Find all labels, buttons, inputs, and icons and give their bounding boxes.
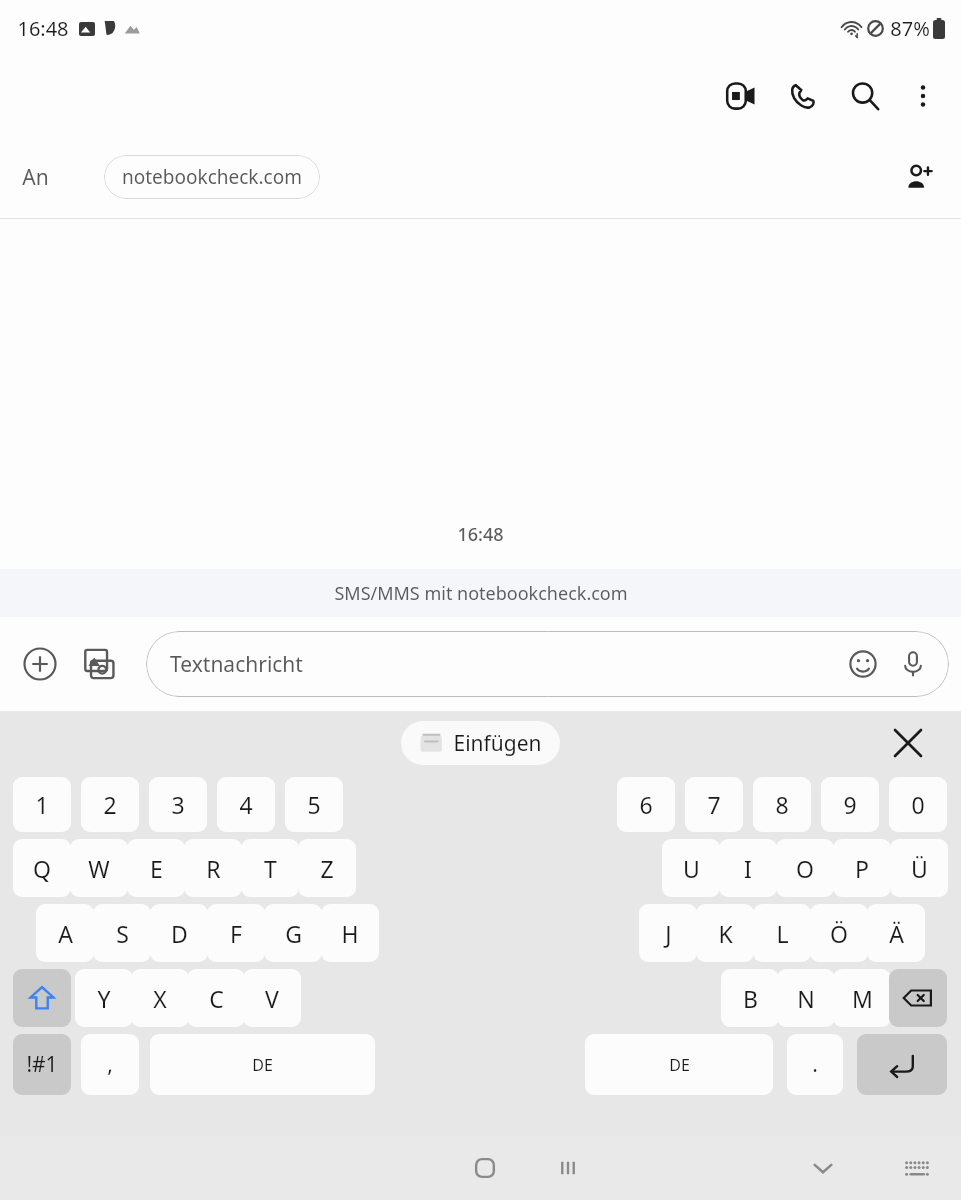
button[interactable]: Hide keyboard	[795, 1140, 851, 1196]
button[interactable]: Ö	[810, 904, 868, 962]
button[interactable]: ,	[81, 1034, 139, 1095]
button[interactable]: G	[264, 904, 322, 962]
button[interactable]: O	[776, 839, 834, 897]
button[interactable]: F	[207, 904, 265, 962]
button[interactable]: .	[787, 1034, 843, 1095]
button[interactable]: T	[241, 839, 299, 897]
button[interactable]: U	[662, 839, 720, 897]
button[interactable]: J	[639, 904, 697, 962]
button[interactable]: H	[321, 904, 379, 962]
button[interactable]: B	[721, 969, 779, 1027]
staticText: Y	[97, 983, 111, 1014]
button[interactable]: Gallery	[76, 640, 124, 688]
button[interactable]: 1	[13, 777, 71, 832]
staticText: O	[796, 853, 814, 884]
staticText: 2	[103, 789, 117, 820]
button[interactable]: More options	[899, 72, 947, 120]
button[interactable]: 4	[217, 777, 275, 832]
button[interactable]: Enter	[857, 1034, 947, 1095]
staticText: 16:48	[457, 522, 504, 547]
button[interactable]: Home	[457, 1140, 513, 1196]
button[interactable]: 5	[285, 777, 343, 832]
button[interactable]: Emoji	[841, 642, 885, 686]
staticText: J	[665, 918, 672, 949]
staticText: Textnachricht	[170, 650, 303, 679]
staticText: R	[206, 853, 221, 884]
button[interactable]: 0	[889, 777, 947, 832]
button[interactable]: W	[70, 839, 128, 897]
button[interactable]: Backspace	[889, 969, 947, 1027]
button[interactable]: !#1	[13, 1034, 71, 1095]
button[interactable]: Ä	[867, 904, 925, 962]
button[interactable]: A	[36, 904, 94, 962]
staticText: W	[88, 853, 110, 884]
staticText: K	[718, 918, 733, 949]
staticText: V	[265, 983, 279, 1014]
button[interactable]: V	[243, 969, 301, 1027]
button[interactable]: 3	[149, 777, 207, 832]
button[interactable]: Y	[75, 969, 133, 1027]
button[interactable]: Call	[779, 72, 827, 120]
staticText: I	[744, 853, 752, 884]
staticText: !#1	[26, 1050, 58, 1079]
button[interactable]: Z	[298, 839, 356, 897]
button[interactable]: Q	[13, 839, 71, 897]
button[interactable]: Ü	[890, 839, 948, 897]
button[interactable]: 9	[821, 777, 879, 832]
button[interactable]: Voice input	[891, 642, 935, 686]
button[interactable]: X	[131, 969, 189, 1027]
staticText: Ä	[889, 918, 904, 949]
button[interactable]: E	[127, 839, 185, 897]
staticText: DE	[252, 1054, 273, 1076]
staticText: F	[230, 918, 242, 949]
button[interactable]: Close clipboard	[885, 720, 931, 766]
staticText: 8	[775, 789, 789, 820]
button[interactable]: 2	[81, 777, 139, 832]
button[interactable]: D	[150, 904, 208, 962]
staticText: 1	[35, 789, 49, 820]
button[interactable]: Add attachment	[16, 640, 64, 688]
staticText: ,	[107, 1050, 113, 1079]
staticText: 4	[239, 789, 253, 820]
staticText: D	[171, 918, 188, 949]
staticText: E	[150, 853, 163, 884]
button[interactable]: P	[833, 839, 891, 897]
staticText: A	[58, 918, 73, 949]
button[interactable]: Video call	[717, 72, 765, 120]
button[interactable]: C	[187, 969, 245, 1027]
button[interactable]: 6	[617, 777, 675, 832]
staticText: 87%	[890, 15, 930, 42]
staticText: An	[22, 163, 49, 192]
button[interactable]: Shift	[13, 969, 71, 1027]
button[interactable]: L	[753, 904, 811, 962]
button[interactable]: DE	[150, 1034, 375, 1095]
button[interactable]: R	[184, 839, 242, 897]
staticText: 3	[171, 789, 185, 820]
staticText: DE	[669, 1054, 690, 1076]
button[interactable]: Textnachricht	[146, 631, 949, 697]
button[interactable]: Search	[841, 72, 889, 120]
button[interactable]: S	[93, 904, 151, 962]
staticText: 7	[707, 789, 721, 820]
button[interactable]: Einfügen	[401, 721, 560, 765]
staticText: C	[209, 983, 224, 1014]
button[interactable]: notebookcheck.com	[104, 155, 320, 199]
button[interactable]: Recent apps	[540, 1140, 596, 1196]
staticText: 16:48	[17, 15, 69, 42]
button[interactable]: M	[833, 969, 891, 1027]
button[interactable]: 8	[753, 777, 811, 832]
staticText: .	[812, 1050, 818, 1079]
staticText: T	[264, 853, 277, 884]
button[interactable]: Add recipient	[895, 153, 943, 201]
button[interactable]: I	[719, 839, 777, 897]
button[interactable]: Keyboard layout	[889, 1140, 945, 1196]
staticText: Einfügen	[453, 729, 542, 758]
button[interactable]: N	[777, 969, 835, 1027]
button[interactable]: 7	[685, 777, 743, 832]
staticText: Q	[33, 853, 51, 884]
staticText: M	[852, 983, 873, 1014]
button[interactable]: K	[696, 904, 754, 962]
staticText: P	[855, 853, 869, 884]
staticText: 0	[911, 789, 925, 820]
button[interactable]: DE	[585, 1034, 773, 1095]
